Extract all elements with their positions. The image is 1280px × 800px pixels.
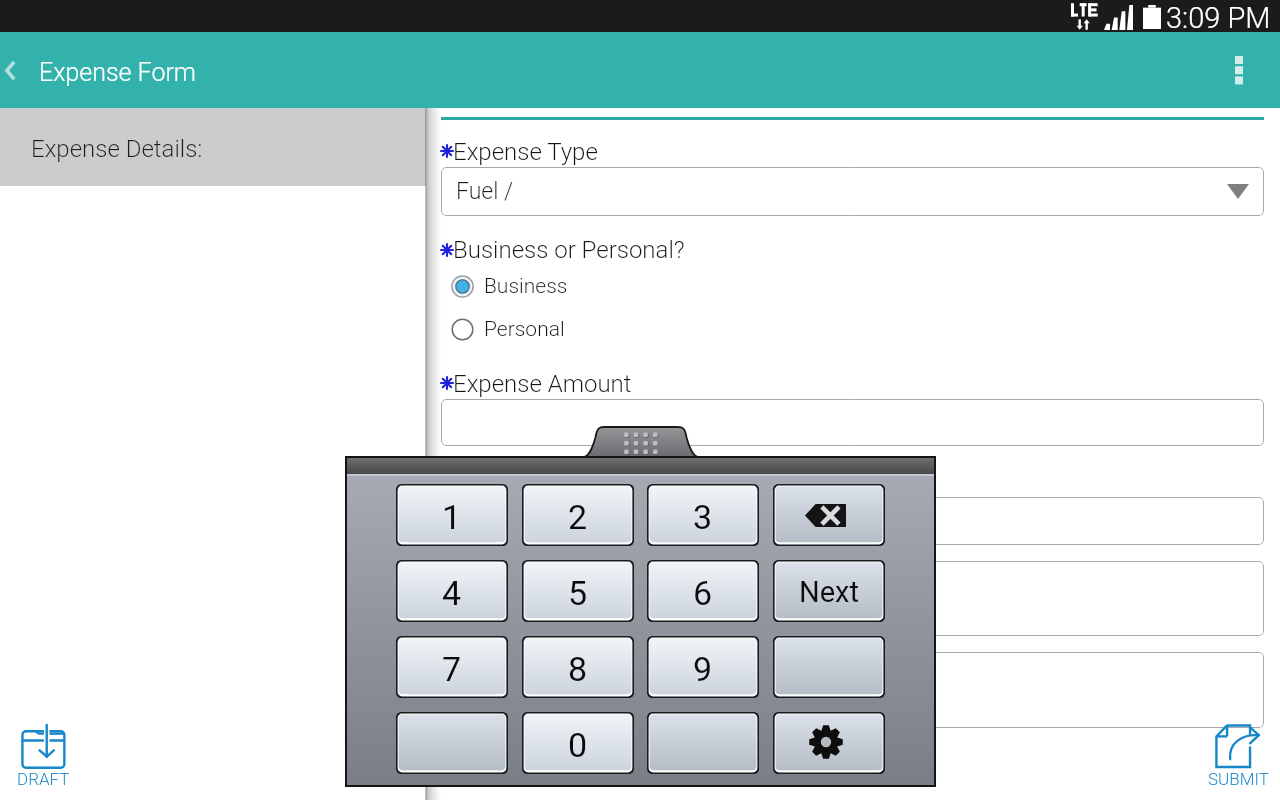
staticText: 4 [442,573,462,613]
button[interactable]: 6 [647,560,759,622]
staticText: 6 [693,573,713,613]
button[interactable]: Next [773,560,885,622]
staticText: 3 [693,497,713,537]
staticText: Personal [484,317,565,342]
button[interactable]: More options [1214,32,1264,108]
staticText: Expense Type [453,138,598,166]
button[interactable]: 9 [647,636,759,698]
button[interactable]: 1 [396,484,508,546]
staticText: Expense Details: [31,135,203,163]
button[interactable]: Navigate back [0,32,30,108]
button[interactable]: DRAFT [6,718,84,796]
staticText: Next [799,575,859,609]
button[interactable]: 3 [647,484,759,546]
staticText: 7 [442,649,462,689]
button[interactable]: Blank key [773,636,885,698]
button[interactable]: Personal [451,314,565,344]
staticText: Business [484,274,568,299]
button[interactable]: 8 [522,636,634,698]
staticText: SUBMIT [1208,769,1269,789]
staticText: 2 [568,497,588,537]
button[interactable]: Keyboard settings [773,712,885,774]
staticText: 3:09 PM [1166,1,1271,33]
button[interactable]: Text field [441,497,1264,545]
staticText: 1 [442,497,462,537]
staticText: 0 [568,725,588,765]
button[interactable]: Text field [441,561,1264,636]
button[interactable]: Move keyboard [584,426,698,457]
staticText: Business or Personal? [453,236,685,264]
button[interactable]: Expense Amount field [441,399,1264,446]
staticText: Expense Amount [453,370,632,398]
staticText: DRAFT [17,769,70,789]
staticText: 9 [693,649,713,689]
button[interactable]: Backspace [773,484,885,546]
button[interactable]: Blank key [396,712,508,774]
button[interactable]: 2 [522,484,634,546]
button[interactable]: 7 [396,636,508,698]
staticText: Fuel / [456,178,514,205]
staticText: 8 [568,649,588,689]
button[interactable]: 5 [522,560,634,622]
button[interactable]: 0 [522,712,634,774]
button[interactable]: Expense Type dropdown [441,167,1264,216]
button[interactable]: Blank key [647,712,759,774]
button[interactable]: Business [451,271,568,301]
button[interactable]: Notes field [441,652,1264,728]
button[interactable]: 4 [396,560,508,622]
staticText: Expense Form [39,58,197,87]
staticText: 5 [568,573,588,613]
button[interactable]: SUBMIT [1200,718,1278,796]
button[interactable]: Expense Details: [0,108,426,186]
